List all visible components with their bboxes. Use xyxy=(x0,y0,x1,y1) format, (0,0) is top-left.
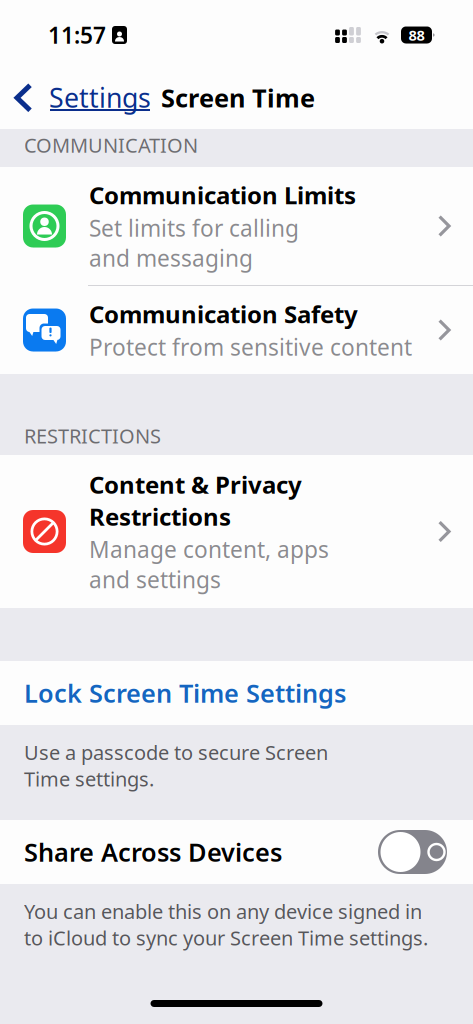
staticText: Protect from sensitive content xyxy=(89,332,412,362)
button[interactable]: Communication Limits xyxy=(0,167,473,285)
button[interactable]: Share Across Devices xyxy=(0,820,473,884)
staticText: Communication Safety xyxy=(89,298,358,330)
staticText: You can enable this on any device signed… xyxy=(24,898,428,951)
staticText: RESTRICTIONS xyxy=(24,422,161,449)
staticText: Lock Screen Time Settings xyxy=(24,676,346,710)
staticText: Communication Limits xyxy=(89,179,356,211)
button[interactable]: Settings xyxy=(14,80,151,116)
button[interactable]: Content & Privacy Restrictions xyxy=(0,455,473,608)
staticText: 88 xyxy=(408,25,424,45)
staticText: 11:57 xyxy=(48,20,106,50)
staticText: Manage content, apps and settings xyxy=(89,534,329,594)
button[interactable]: Communication Safety xyxy=(0,286,473,374)
staticText: Use a passcode to secure Screen Time set… xyxy=(24,739,328,792)
staticText: Settings xyxy=(49,80,151,115)
staticText: Share Across Devices xyxy=(24,835,282,869)
staticText: Screen Time xyxy=(161,81,315,115)
staticText: COMMUNICATION xyxy=(24,132,198,158)
button[interactable]: Lock Screen Time Settings xyxy=(0,661,473,725)
staticText: Content & Privacy Restrictions xyxy=(89,468,302,532)
staticText: Set limits for calling and messaging xyxy=(89,213,299,273)
